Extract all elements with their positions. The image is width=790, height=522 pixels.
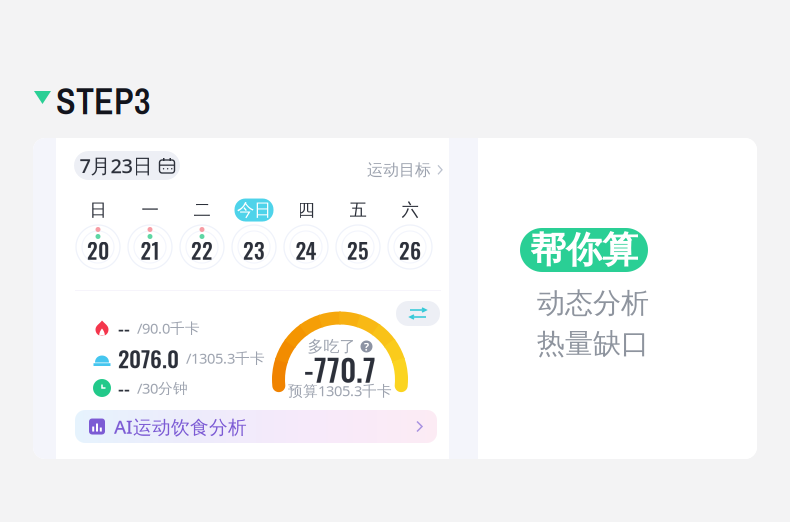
staticText: 四 (297, 199, 314, 221)
staticText: 24 (295, 234, 316, 266)
staticText: 25 (347, 234, 369, 266)
staticText: 22 (191, 234, 213, 266)
staticText: 今日 (237, 199, 271, 221)
button[interactable]: 五 (332, 198, 384, 272)
staticText: ? (364, 339, 369, 354)
staticText: 运动目标 (367, 160, 431, 180)
staticText: 日 (89, 199, 106, 221)
staticText: 23 (243, 234, 265, 266)
button[interactable]: 一 (124, 198, 176, 272)
staticText: 一 (141, 199, 158, 221)
button[interactable]: 日 (72, 198, 124, 272)
staticText: 20 (87, 234, 109, 266)
staticText: 六 (401, 199, 418, 221)
staticText: 7月23日 (79, 152, 152, 179)
button[interactable]: 四 (280, 198, 332, 272)
staticText: AI运动饮食分析 (114, 414, 247, 439)
button[interactable]: 运动目标 (367, 160, 443, 180)
staticText: 2076.0 (118, 341, 179, 375)
button[interactable]: 六 (384, 198, 436, 272)
button[interactable]: Swap (396, 301, 440, 326)
staticText: 26 (399, 234, 421, 266)
staticText: -770.7 (304, 346, 376, 392)
button[interactable]: 7月23日 (74, 151, 180, 180)
staticText: 动态分析 (537, 286, 649, 320)
staticText: 二 (193, 199, 210, 221)
staticText: /30分钟 (137, 378, 188, 398)
staticText: 帮你算 (530, 228, 638, 272)
staticText: -- (118, 314, 130, 342)
button[interactable]: 二 (176, 198, 228, 272)
staticText: 五 (349, 199, 366, 221)
button[interactable]: AI运动饮食分析 (75, 410, 437, 443)
staticText: STEP3 (56, 77, 150, 125)
staticText: 预算1305.3千卡 (288, 381, 392, 400)
staticText: 热量缺口 (537, 326, 649, 361)
staticText: 多吃了 (307, 337, 355, 356)
staticText: /90.0千卡 (137, 318, 200, 338)
button[interactable]: 今日 (228, 198, 280, 272)
staticText: 21 (140, 234, 159, 266)
staticText: -- (118, 374, 130, 402)
staticText: /1305.3千卡 (186, 348, 265, 368)
